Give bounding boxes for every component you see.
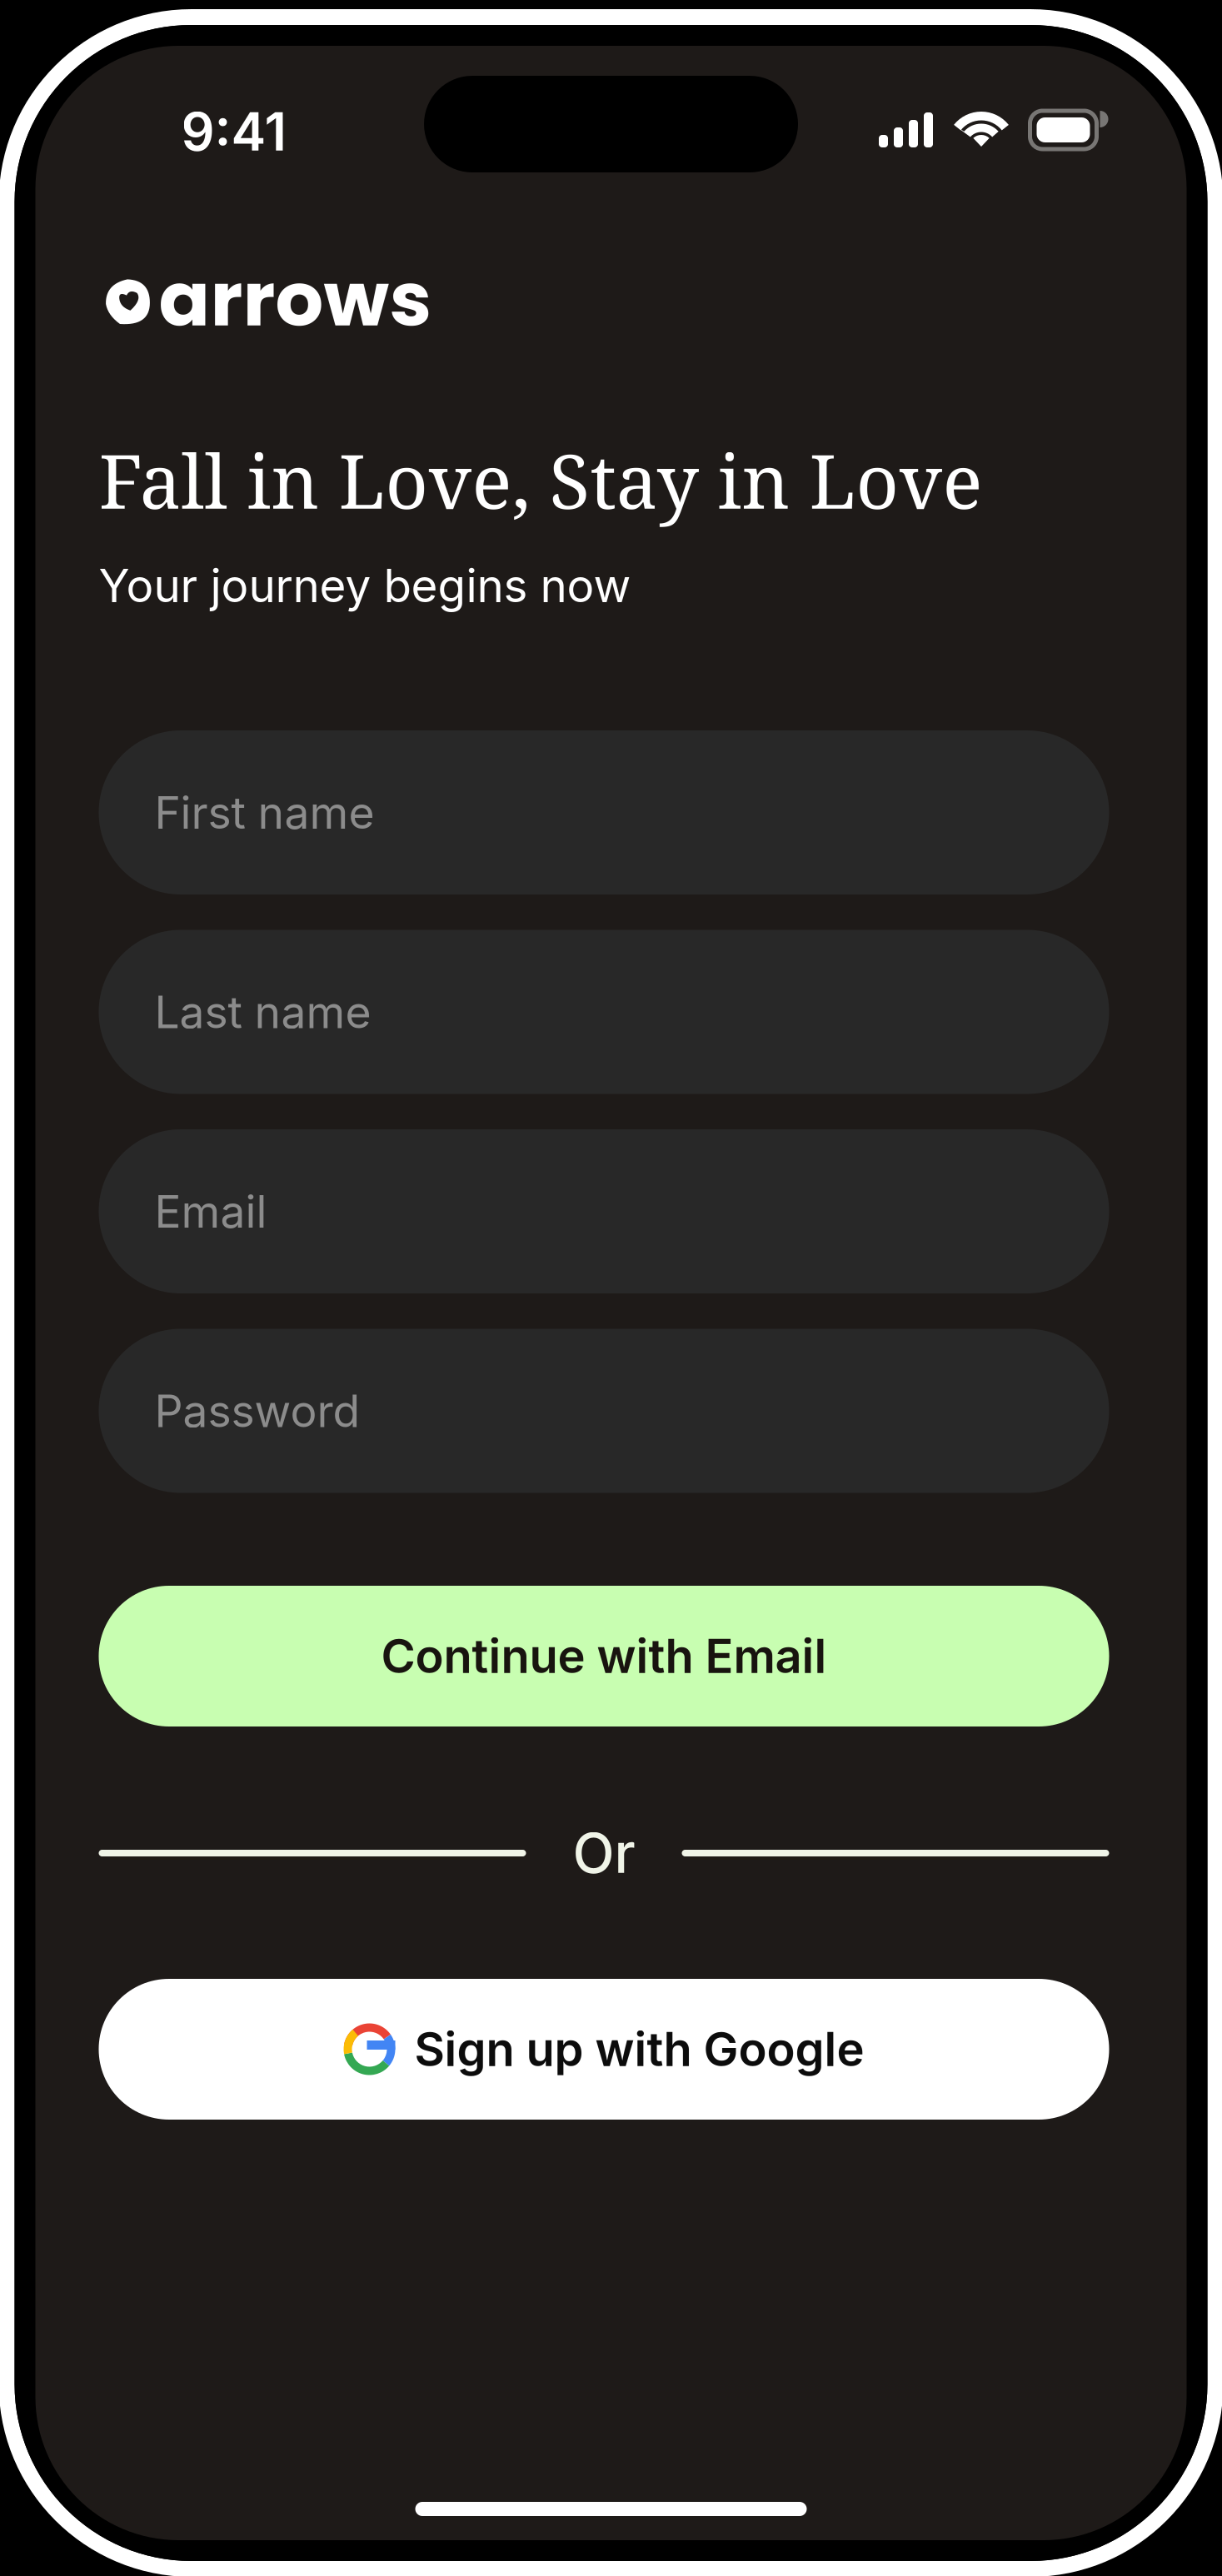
staticText: arrows [159, 246, 432, 352]
button[interactable]: First name [99, 730, 1109, 894]
staticText: First name [155, 786, 374, 839]
button[interactable]: Password [99, 1329, 1109, 1493]
button[interactable]: Sign up with Google [99, 1979, 1109, 2120]
button[interactable]: Email [99, 1129, 1109, 1293]
button[interactable]: Last name [99, 930, 1109, 1094]
staticText: Password [155, 1384, 360, 1438]
button[interactable]: arrows [105, 268, 432, 335]
staticText: Sign up with Google [414, 2021, 864, 2077]
staticText: Continue with Email [381, 1628, 827, 1684]
staticText: Or [573, 1820, 635, 1886]
staticText: 9:41 [181, 100, 286, 163]
staticText: Your journey begins now [99, 558, 631, 613]
staticText: Fall in Love, Stay in Love [99, 429, 983, 530]
staticText: Email [155, 1184, 267, 1238]
staticText: Last name [155, 985, 371, 1039]
button[interactable]: Continue with Email [99, 1586, 1109, 1726]
